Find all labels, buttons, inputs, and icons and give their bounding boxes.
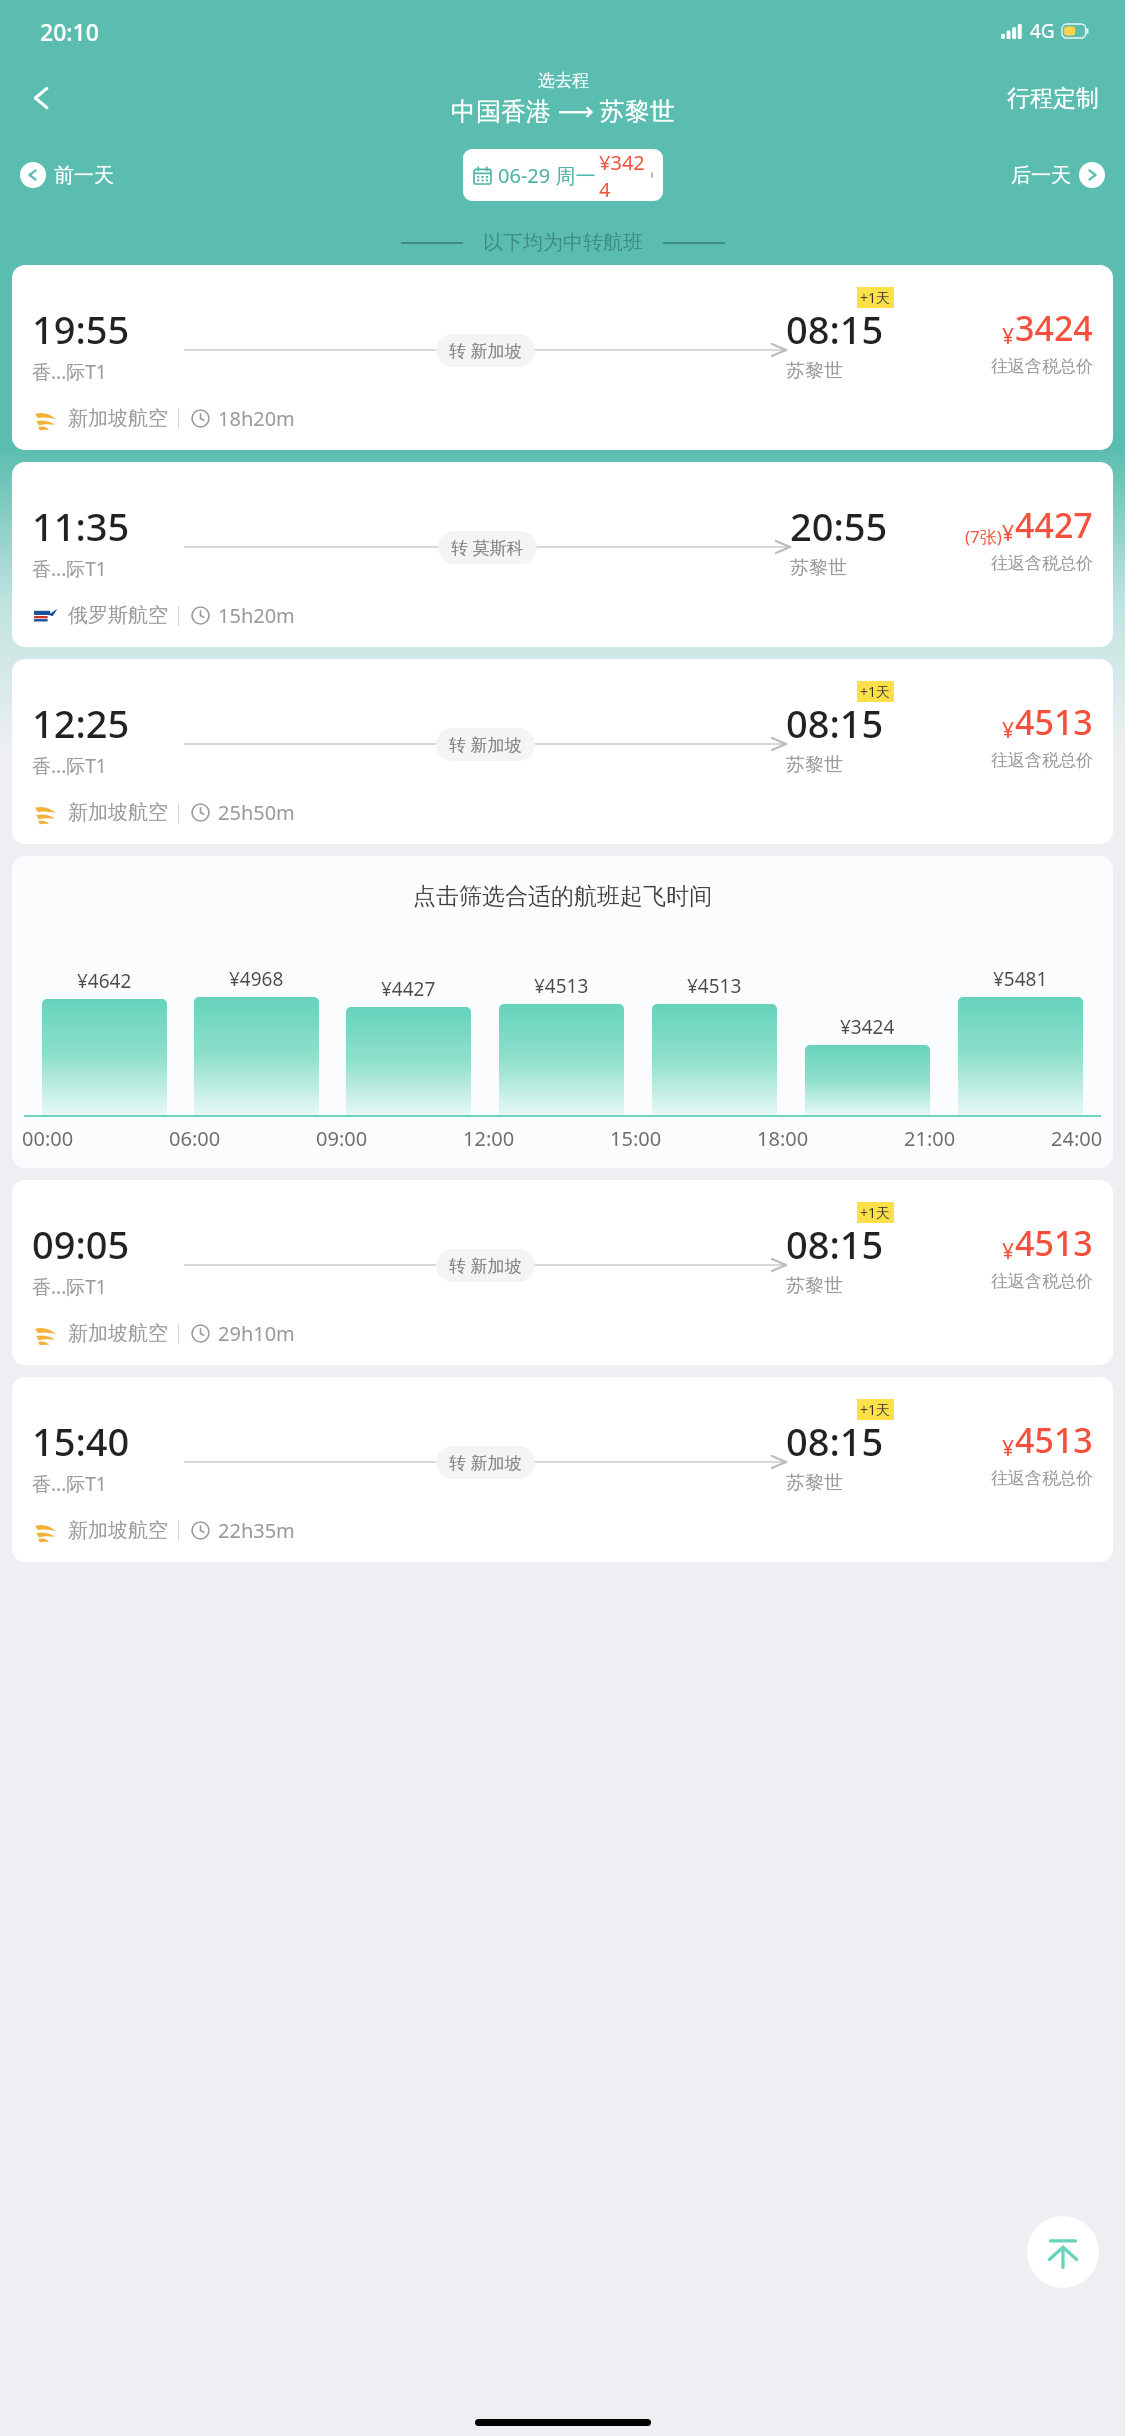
staticText: 24:00	[1051, 1125, 1103, 1152]
button[interactable]: 15:40	[12, 1377, 1113, 1562]
staticText: 4513	[1015, 1220, 1093, 1266]
staticText: +1天	[860, 288, 891, 307]
staticText: 往返含税总价	[991, 1271, 1093, 1292]
staticText: ¥4642	[77, 968, 132, 994]
button[interactable]: Back	[14, 70, 70, 126]
staticText: 转 新加坡	[449, 1451, 522, 1474]
staticText: 新加坡航空	[68, 406, 168, 431]
staticText: ¥3424	[599, 149, 652, 201]
staticText: 4513	[1015, 699, 1093, 745]
button[interactable]: 06-29 周一	[463, 149, 663, 201]
staticText: ¥4968	[229, 966, 284, 992]
button[interactable]: 点击筛选合适的航班起飞时间	[12, 856, 1113, 1168]
staticText: 新加坡航空	[68, 1518, 168, 1543]
staticText: 06:00	[169, 1125, 221, 1152]
staticText: 苏黎世	[786, 753, 843, 777]
staticText: 09:05	[32, 1218, 130, 1270]
button[interactable]: 11:35	[12, 462, 1113, 647]
staticText: ¥	[1002, 519, 1015, 548]
staticText: 中国香港 ⟶ 苏黎世	[451, 93, 675, 127]
staticText: ¥4427	[381, 976, 436, 1002]
staticText: 往返含税总价	[991, 553, 1093, 574]
staticText: 新加坡航空	[68, 1321, 168, 1346]
staticText: 20:10	[40, 16, 99, 47]
staticText: 转 新加坡	[449, 1254, 522, 1277]
staticText: ¥5481	[993, 966, 1048, 992]
staticText: ¥4513	[687, 973, 742, 999]
staticText: 20:55	[790, 500, 888, 552]
staticText: 06-29 周一	[498, 162, 596, 189]
staticText: 08:15	[786, 1218, 884, 1270]
staticText: 转 新加坡	[449, 339, 522, 362]
staticText: 苏黎世	[790, 556, 847, 580]
staticText: 21:00	[904, 1125, 956, 1152]
staticText: ¥3424	[840, 1014, 895, 1040]
staticText: 18h20m	[218, 405, 295, 432]
button[interactable]: 09:05	[12, 1180, 1113, 1365]
staticText: 香...际T1	[32, 556, 107, 582]
staticText: 18:00	[757, 1125, 809, 1152]
staticText: 俄罗斯航空	[68, 603, 168, 628]
button[interactable]: 19:55	[12, 265, 1113, 450]
staticText: (7张)	[965, 525, 1002, 548]
staticText: 往返含税总价	[991, 750, 1093, 771]
button[interactable]: 前一天	[14, 156, 120, 194]
staticText: 15h20m	[218, 602, 295, 629]
staticText: 3424	[1015, 305, 1093, 351]
staticText: 09:00	[316, 1125, 368, 1152]
staticText: 4G	[1030, 18, 1055, 44]
staticText: ¥	[1002, 322, 1015, 351]
staticText: 苏黎世	[786, 359, 843, 383]
staticText: 苏黎世	[786, 1274, 843, 1298]
staticText: 行程定制	[1007, 84, 1099, 113]
staticText: 前一天	[54, 163, 114, 188]
staticText: +1天	[860, 1400, 891, 1419]
staticText: 11:35	[32, 500, 130, 552]
staticText: 苏黎世	[786, 1471, 843, 1495]
staticText: ¥	[1002, 1434, 1015, 1463]
staticText: 4427	[1015, 502, 1093, 548]
staticText: 29h10m	[218, 1320, 295, 1347]
staticText: ¥	[1002, 716, 1015, 745]
staticText: 转 新加坡	[449, 733, 522, 756]
staticText: 15:40	[32, 1415, 130, 1467]
staticText: 4513	[1015, 1417, 1093, 1463]
staticText: 12:00	[463, 1125, 515, 1152]
staticText: 香...际T1	[32, 753, 107, 779]
staticText: 00:00	[22, 1125, 74, 1152]
staticText: 以下均为中转航班	[483, 230, 643, 255]
staticText: +1天	[860, 682, 891, 701]
staticText: 点击筛选合适的航班起飞时间	[413, 882, 712, 911]
staticText: 新加坡航空	[68, 800, 168, 825]
staticText: 12:25	[32, 697, 130, 749]
staticText: 后一天	[1011, 163, 1071, 188]
staticText: 08:15	[786, 303, 884, 355]
staticText: ¥4513	[534, 973, 589, 999]
staticText: 22h35m	[218, 1517, 295, 1544]
staticText: 25h50m	[218, 799, 295, 826]
staticText: 香...际T1	[32, 1471, 107, 1497]
staticText: ¥	[1002, 1237, 1015, 1266]
staticText: 香...际T1	[32, 1274, 107, 1300]
button[interactable]: Back to top	[1027, 2216, 1099, 2288]
staticText: 香...际T1	[32, 359, 107, 385]
staticText: 19:55	[32, 303, 130, 355]
staticText: 08:15	[786, 697, 884, 749]
staticText: 选去程	[538, 70, 589, 91]
button[interactable]: 行程定制	[1003, 78, 1103, 119]
button[interactable]: 后一天	[1005, 156, 1111, 194]
button[interactable]: 12:25	[12, 659, 1113, 844]
staticText: 往返含税总价	[991, 356, 1093, 377]
staticText: 转 莫斯科	[451, 536, 524, 559]
staticText: 15:00	[610, 1125, 662, 1152]
staticText: +1天	[860, 1203, 891, 1222]
staticText: 08:15	[786, 1415, 884, 1467]
staticText: 往返含税总价	[991, 1468, 1093, 1489]
